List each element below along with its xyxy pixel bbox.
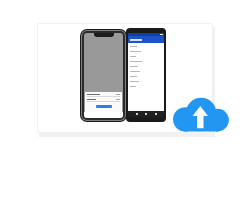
button[interactable]	[80, 29, 127, 122]
button[interactable]	[96, 105, 112, 108]
button[interactable]: Cloud upload	[172, 93, 228, 137]
button[interactable]	[126, 28, 166, 122]
button[interactable]	[128, 36, 164, 43]
